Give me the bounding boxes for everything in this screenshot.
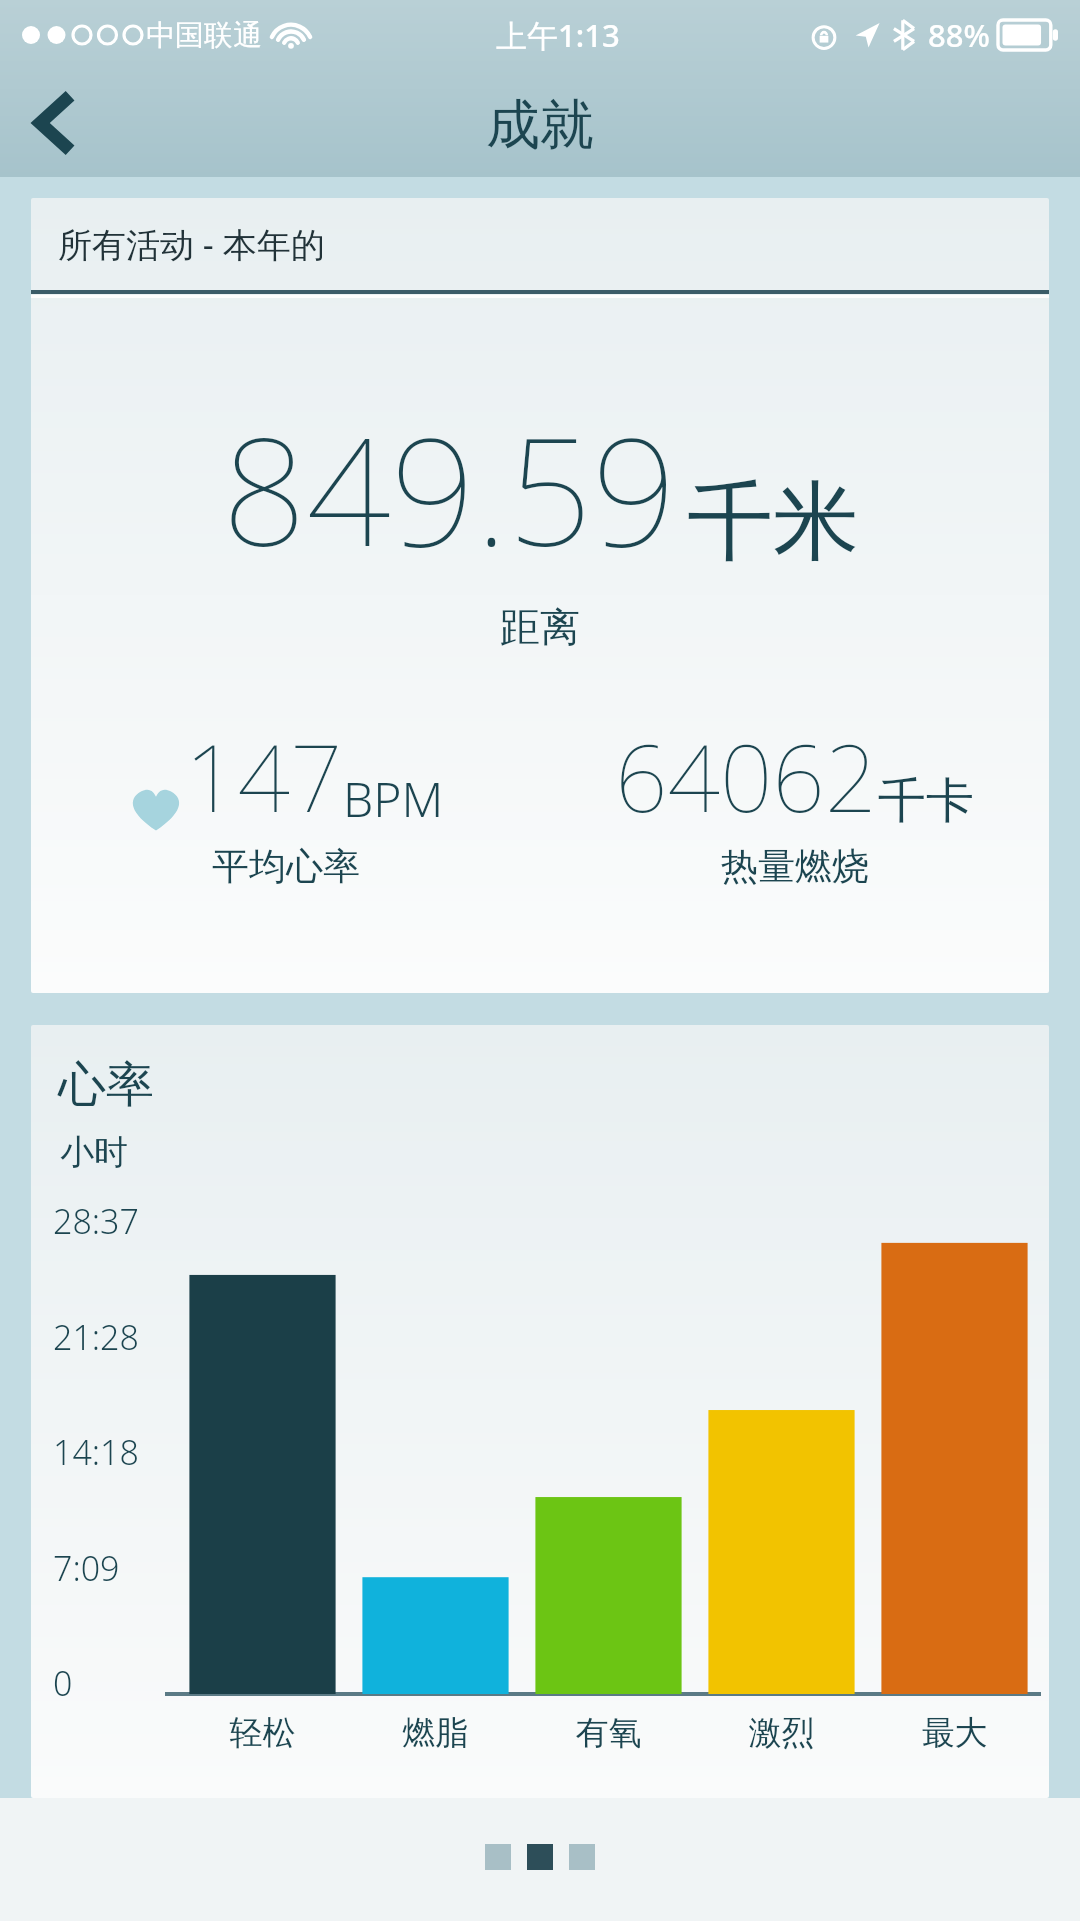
staticText: 7:09	[53, 1545, 120, 1591]
staticText: 千米	[687, 468, 859, 576]
staticText: 所有活动 - 本年的	[58, 221, 325, 267]
staticText: 88%	[928, 14, 990, 56]
staticText: 成就	[486, 91, 594, 159]
staticText: BPM	[343, 766, 444, 831]
staticText: 燃脂	[349, 1712, 522, 1754]
staticText: 21:28	[53, 1314, 139, 1360]
staticText: 上午1:13	[496, 14, 620, 56]
button[interactable]: Back	[8, 75, 104, 171]
staticText: 千卡	[878, 771, 974, 831]
staticText: 轻松	[176, 1712, 349, 1754]
staticText: 64062	[615, 714, 878, 839]
staticText: 147	[185, 714, 343, 839]
staticText: 激烈	[695, 1712, 868, 1754]
staticText: 心率	[58, 1055, 154, 1115]
staticText: 0	[53, 1660, 73, 1706]
staticText: 平均心率	[212, 843, 360, 890]
staticText: 849.59	[222, 388, 677, 590]
staticText: 14:18	[53, 1429, 139, 1475]
staticText: 距离	[31, 602, 1049, 652]
staticText: 中国联通	[146, 17, 262, 54]
staticText: 最大	[868, 1712, 1041, 1754]
staticText: 热量燃烧	[721, 843, 869, 890]
staticText: 有氧	[522, 1712, 695, 1754]
staticText: 小时	[60, 1131, 128, 1174]
button[interactable]: 心率	[31, 1025, 1049, 1798]
button[interactable]: 所有活动 - 本年的	[31, 198, 1049, 993]
staticText: 28:37	[53, 1198, 139, 1244]
